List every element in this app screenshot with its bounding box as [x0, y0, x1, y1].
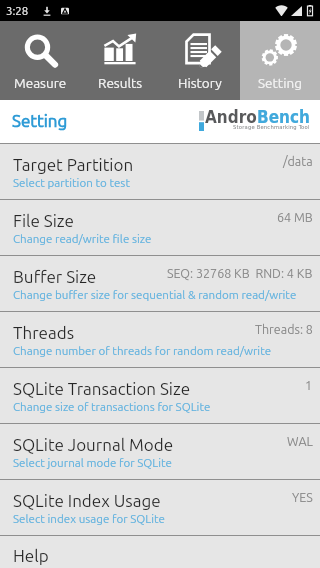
staticText: Change read/write file size: [13, 232, 152, 245]
button[interactable]: Buffer Size: [0, 256, 320, 311]
staticText: Change number of threads for random read…: [13, 344, 272, 357]
staticText: SQLite Journal Mode: [13, 435, 174, 454]
button[interactable]: Threads: [0, 312, 320, 367]
staticText: SQLite Transaction Size: [13, 379, 191, 398]
button[interactable]: Measure: [0, 21, 80, 100]
staticText: Threads: 8: [255, 322, 313, 336]
staticText: Select index usage for SQLite: [13, 512, 165, 525]
staticText: Andro: [205, 107, 257, 127]
button[interactable]: History: [160, 21, 240, 100]
button[interactable]: SQLite Transaction Size: [0, 368, 320, 423]
staticText: /data: [283, 154, 313, 168]
staticText: Select partition to test: [13, 176, 130, 189]
staticText: SQLite Index Usage: [13, 491, 161, 510]
staticText: Buffer Size: [13, 267, 97, 286]
staticText: History: [178, 75, 222, 90]
staticText: WAL: [287, 434, 313, 448]
button[interactable]: SQLite Journal Mode: [0, 424, 320, 479]
staticText: Change buffer size for sequential & rand…: [13, 288, 297, 301]
staticText: 64 MB: [277, 210, 313, 224]
button[interactable]: Help: [0, 536, 320, 568]
staticText: Help: [13, 546, 49, 565]
staticText: 1: [305, 378, 313, 392]
staticText: Bench: [257, 107, 310, 127]
button[interactable]: Target Partition: [0, 144, 320, 199]
staticText: Threads: [13, 323, 75, 342]
button[interactable]: SQLite Index Usage: [0, 480, 320, 535]
staticText: Measure: [14, 75, 67, 90]
staticText: File Size: [13, 211, 74, 230]
staticText: 3:28: [6, 4, 29, 17]
staticText: Setting: [12, 111, 68, 130]
staticText: Setting: [258, 75, 302, 90]
staticText: SEQ: 32768 KB RND: 4 KB: [167, 266, 313, 280]
button[interactable]: Setting: [240, 21, 320, 100]
staticText: Select journal mode for SQLite: [13, 456, 172, 469]
staticText: Change size of transactions for SQLite: [13, 400, 211, 413]
staticText: Results: [98, 75, 143, 90]
staticText: YES: [292, 490, 313, 504]
button[interactable]: File Size: [0, 200, 320, 255]
staticText: Target Partition: [13, 155, 134, 174]
button[interactable]: Results: [80, 21, 160, 100]
staticText: Storage Benchmarking Tool: [233, 124, 310, 131]
